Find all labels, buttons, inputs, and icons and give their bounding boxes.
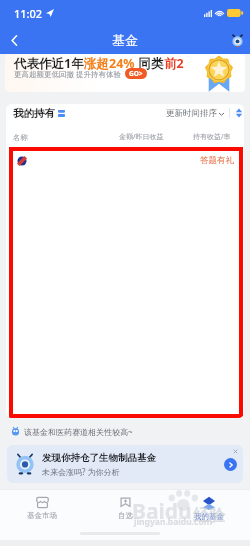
staticText: 金额/昨日收益 (119, 132, 164, 142)
staticText: 前2 (164, 55, 184, 72)
button[interactable]: 我的基金 (167, 496, 250, 540)
staticText: 经验 (193, 506, 225, 526)
button[interactable]: AI assistant (228, 31, 246, 49)
staticText: 基金 (112, 32, 138, 48)
button[interactable]: Close (231, 447, 240, 456)
staticText: 更高超额更低回撤 提升持有体验 (14, 69, 121, 79)
staticText: 代表作近1年 (14, 55, 84, 72)
staticText: 答题有礼 (200, 155, 234, 166)
button[interactable]: Back (0, 26, 28, 54)
button[interactable]: Open analysis (224, 458, 237, 471)
staticText: 同类 (135, 55, 164, 72)
staticText: 基金市场 (27, 511, 57, 520)
staticText: 名称 (13, 133, 28, 142)
staticText: 持有收益/率 (193, 132, 231, 142)
staticText: jingyan.baidu.com (134, 516, 213, 528)
button[interactable]: 发现你持仓了生物制品基金 (7, 445, 243, 483)
staticText: Baidu (132, 497, 192, 526)
staticText: 我的基金 (194, 512, 224, 521)
button[interactable]: 自选 (84, 496, 167, 540)
button[interactable]: Toggle amount visibility (58, 110, 65, 117)
button[interactable]: 基金市场 (0, 496, 84, 540)
staticText: GO> (129, 69, 143, 78)
button[interactable]: GO> (129, 69, 143, 78)
staticText: 发现你持仓了生物制品基金 (42, 452, 156, 464)
staticText: 我的持有 (13, 107, 55, 120)
staticText: 更新时间排序 (166, 108, 217, 119)
button[interactable]: 更新时间排序 (166, 108, 224, 119)
button[interactable]: Sort order (235, 108, 243, 118)
staticText: 涨超24% (84, 55, 135, 72)
staticText: 未来会涨吗? 为你分析 (42, 466, 120, 477)
staticText: 11:02 (14, 6, 43, 21)
button[interactable]: 代表作近1年 (5, 54, 245, 92)
staticText: 该基金和医药赛道相关性较高~ (24, 426, 133, 437)
staticText: 自选 (118, 511, 133, 520)
